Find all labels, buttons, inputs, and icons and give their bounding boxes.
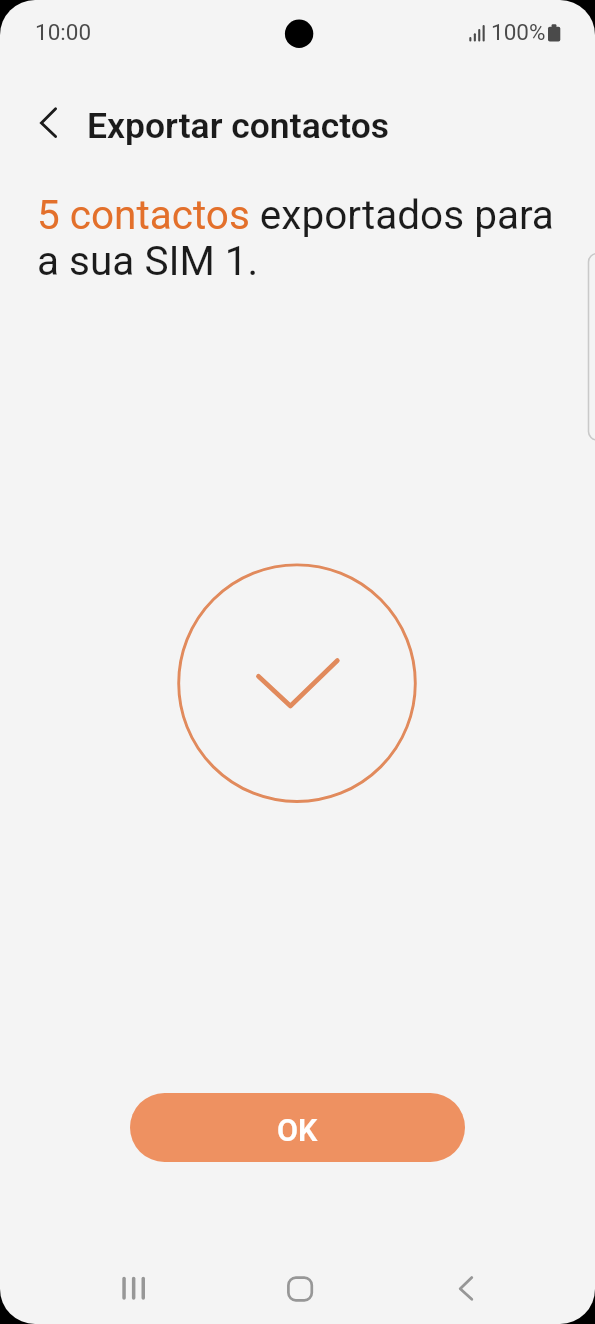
button[interactable]: OK	[130, 1093, 465, 1162]
button[interactable]: Home	[265, 1254, 333, 1322]
button[interactable]: Recent apps	[99, 1254, 167, 1322]
button[interactable]: Back	[432, 1254, 500, 1322]
staticText: 100%	[491, 19, 546, 45]
staticText: OK	[277, 1113, 318, 1149]
staticText: Exportar contactos	[87, 105, 390, 147]
staticText: 5 contactos exportados para a sua SIM 1.	[37, 191, 582, 285]
button[interactable]: Back	[20, 95, 76, 151]
staticText: 10:00	[35, 19, 92, 45]
